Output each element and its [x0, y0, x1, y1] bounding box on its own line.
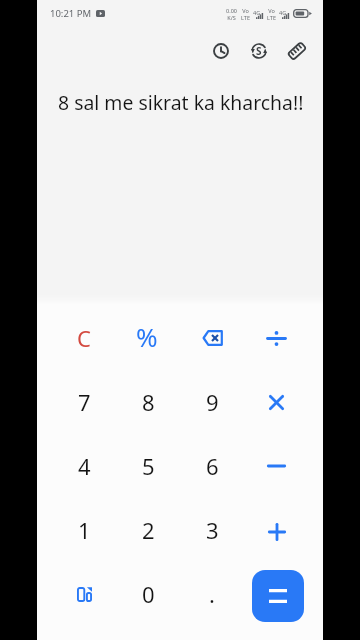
button[interactable]: 5: [116, 434, 180, 498]
staticText: 3: [206, 515, 219, 545]
staticText: 9: [206, 387, 219, 417]
staticText: %: [136, 319, 158, 354]
staticText: 4: [78, 451, 91, 481]
button[interactable]: Toggle keypad: [52, 562, 116, 626]
staticText: 1: [78, 515, 91, 545]
button[interactable]: Unit converter: [278, 32, 316, 70]
button[interactable]: Divide: [244, 306, 308, 370]
button[interactable]: 6: [180, 434, 244, 498]
button[interactable]: 0: [116, 562, 180, 626]
staticText: C: [77, 323, 91, 353]
staticText: 7: [78, 387, 91, 417]
button[interactable]: 9: [180, 370, 244, 434]
button[interactable]: Equals: [244, 562, 308, 626]
button[interactable]: %: [116, 306, 180, 370]
staticText: 2: [142, 515, 155, 545]
other: Multiply: [269, 395, 284, 410]
staticText: S: [256, 44, 262, 58]
staticText: Vo: [268, 7, 275, 14]
staticText: .: [209, 579, 215, 609]
other: Subtract: [267, 463, 286, 469]
staticText: LTE: [267, 14, 276, 21]
other: Backspace: [202, 330, 223, 346]
staticText: 5: [142, 451, 155, 481]
button[interactable]: Add: [244, 498, 308, 562]
button[interactable]: 8: [116, 370, 180, 434]
button[interactable]: Multiply: [244, 370, 308, 434]
staticText: 8: [142, 387, 155, 417]
button[interactable]: Subtract: [244, 434, 308, 498]
button[interactable]: Currency converter: [240, 32, 278, 70]
staticText: 6: [206, 451, 219, 481]
staticText: 10:21 PM: [50, 7, 92, 20]
button[interactable]: 7: [52, 370, 116, 434]
button[interactable]: C: [52, 306, 116, 370]
button[interactable]: Equals: [252, 570, 304, 622]
button[interactable]: 4: [52, 434, 116, 498]
staticText: K/S: [227, 14, 236, 21]
staticText: 4G: [253, 9, 261, 16]
staticText: 4G: [279, 9, 287, 16]
button[interactable]: 1: [52, 498, 116, 562]
other: Divide: [267, 330, 286, 347]
staticText: LTE: [241, 14, 250, 21]
button[interactable]: 3: [180, 498, 244, 562]
button[interactable]: 2: [116, 498, 180, 562]
staticText: Vo: [242, 7, 249, 14]
button[interactable]: Backspace: [180, 306, 244, 370]
staticText: 0: [142, 579, 155, 609]
staticText: 0.00: [226, 7, 237, 14]
button[interactable]: .: [180, 562, 244, 626]
button[interactable]: History: [202, 32, 240, 70]
other: Add: [268, 523, 286, 541]
staticText: 8 sal me sikrat ka kharcha!!: [58, 89, 304, 115]
other: Toggle keypad: [77, 587, 92, 602]
